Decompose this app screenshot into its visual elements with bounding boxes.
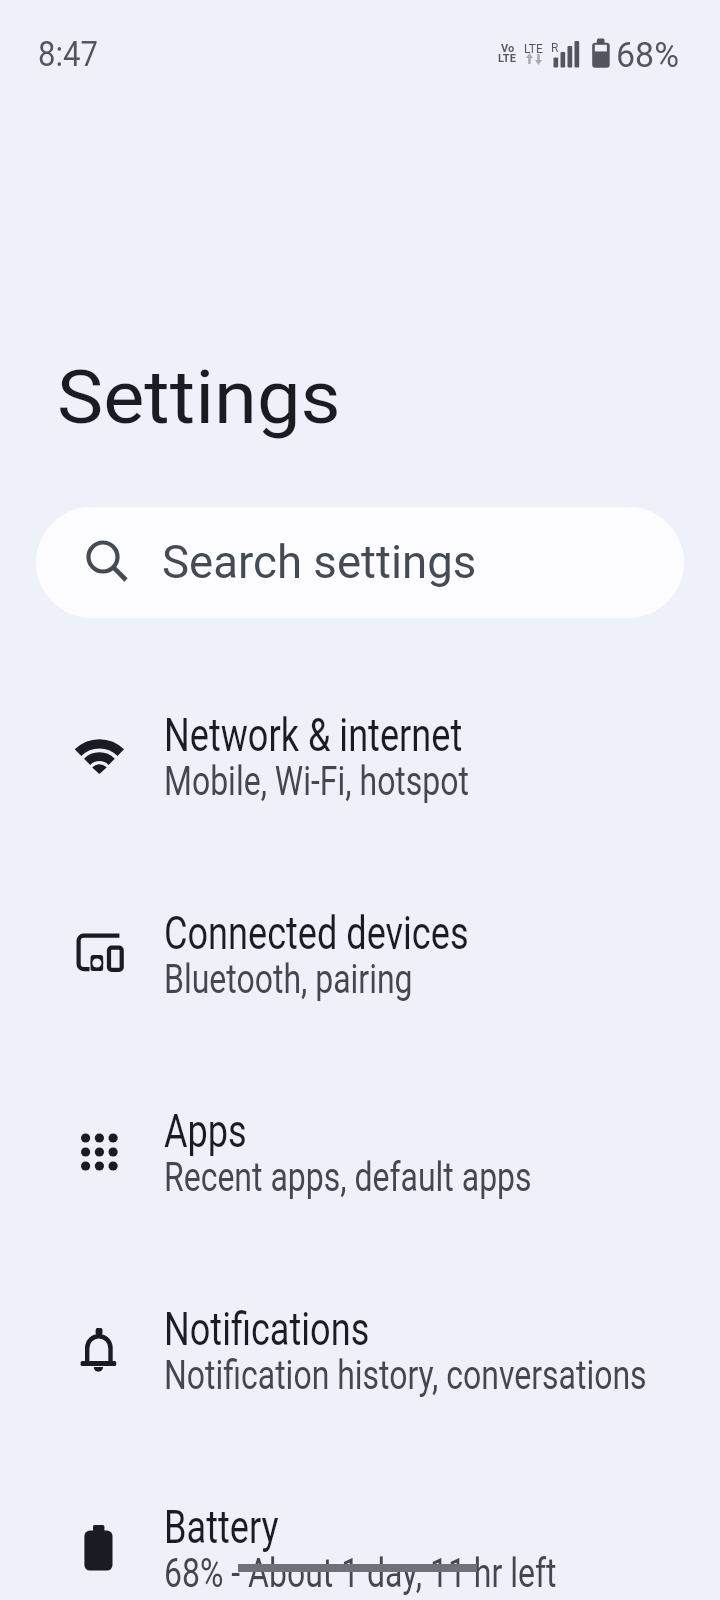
staticText: Mobile, Wi-Fi, hotspot [164,757,470,805]
staticText: Notifications [164,1302,370,1356]
staticText: Battery [164,1500,279,1554]
staticText: Notification history, conversations [164,1351,647,1399]
button[interactable]: Search settings [36,507,684,618]
button[interactable]: Battery [0,1473,720,1600]
button[interactable]: Connected devices [0,879,720,1029]
staticText: Apps [164,1104,247,1158]
staticText: Bluetooth, pairing [164,955,413,1003]
staticText: Network & internet [164,708,462,762]
staticText: 8:47 [38,34,98,75]
button[interactable]: Network & internet [0,681,720,831]
staticText: Connected devices [164,906,469,960]
staticText: 68% [616,35,679,76]
staticText: Recent apps, default apps [164,1153,532,1201]
button[interactable]: Notifications [0,1275,720,1425]
staticText: R [551,41,559,55]
staticText: Vo [501,42,515,55]
button[interactable]: Apps [0,1077,720,1227]
staticText: LTE [524,42,543,56]
staticText: Settings [57,354,341,441]
staticText: 68% - About 1 day, 11 hr left [164,1549,557,1597]
staticText: LTE [498,52,516,65]
staticText: Search settings [162,534,476,589]
